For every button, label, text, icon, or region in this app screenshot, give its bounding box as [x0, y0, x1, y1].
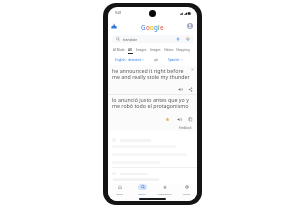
button[interactable]: Images — [148, 48, 162, 52]
button[interactable]: Share — [188, 87, 193, 92]
staticText: Images — [136, 48, 147, 52]
staticText: l — [158, 23, 160, 31]
staticText: o — [146, 23, 150, 31]
staticText: All — [128, 48, 132, 52]
button[interactable]: Copy — [188, 117, 193, 122]
button[interactable]: Listen — [178, 87, 183, 92]
button[interactable]: Videos — [162, 48, 175, 52]
button[interactable]: All — [126, 48, 134, 54]
staticText: Images — [150, 48, 161, 52]
button[interactable]: Activity — [175, 183, 197, 197]
staticText: o — [150, 23, 154, 31]
button[interactable]: Search — [131, 183, 153, 197]
staticText: Shopping — [176, 48, 190, 52]
staticText: translate — [123, 37, 176, 42]
button[interactable]: Listen — [177, 117, 182, 122]
staticText: Home — [116, 192, 123, 195]
button[interactable]: Notifications — [153, 183, 175, 197]
button[interactable]: AI Mode — [111, 48, 126, 52]
button[interactable]: Translate — [111, 23, 117, 29]
button[interactable]: English - detected — [115, 58, 144, 62]
button[interactable]: Home — [108, 183, 131, 197]
staticText: Spanish — [168, 58, 180, 62]
button[interactable]: translate — [112, 35, 194, 43]
button[interactable]: Clear — [191, 68, 194, 71]
staticText: Videos — [164, 48, 174, 52]
staticText: Search — [138, 192, 146, 195]
button[interactable]: Save — [165, 117, 170, 122]
button[interactable]: Shopping — [175, 48, 191, 52]
staticText: English - detected — [115, 58, 141, 62]
staticText: AI Mode — [113, 48, 125, 52]
button[interactable]: Spanish — [168, 58, 183, 62]
staticText: e — [160, 23, 164, 31]
staticText: G — [141, 23, 146, 31]
staticText: Notifications — [157, 192, 172, 195]
staticText: Activity — [182, 192, 191, 195]
staticText: lo anunció justo antes que yo y me robó … — [112, 96, 191, 110]
button[interactable]: Images — [134, 48, 148, 52]
button[interactable]: Feedback — [179, 126, 192, 130]
button[interactable]: Swap languages — [154, 58, 158, 62]
staticText: 9:41 — [115, 11, 122, 15]
staticText: g — [154, 23, 158, 31]
button[interactable]: Account — [187, 23, 193, 29]
staticText: he announced it right before me and real… — [112, 67, 191, 81]
